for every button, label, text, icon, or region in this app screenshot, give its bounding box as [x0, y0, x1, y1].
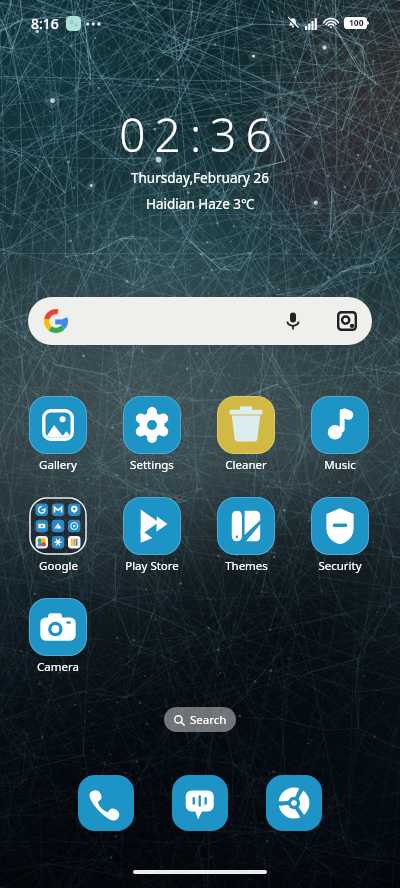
button[interactable]: Themes	[204, 494, 288, 576]
staticText: Security	[318, 558, 362, 574]
button[interactable]: Phone	[78, 775, 134, 831]
staticText: Themes	[225, 558, 268, 574]
button[interactable]: Search	[164, 707, 236, 732]
button[interactable]: Security	[298, 494, 382, 576]
button[interactable]: Chrome	[266, 775, 322, 831]
button[interactable]: Settings	[110, 393, 194, 475]
button[interactable]: Camera	[16, 595, 100, 677]
staticText: 100	[349, 17, 364, 29]
other: Voice search	[283, 311, 303, 331]
staticText: 02:36	[119, 103, 281, 166]
other: Google Lens	[336, 310, 358, 332]
button[interactable]: Cleaner	[204, 393, 288, 475]
button[interactable]: Voice search	[28, 297, 372, 345]
staticText: Settings	[130, 457, 174, 473]
button[interactable]: Gallery	[16, 393, 100, 475]
button[interactable]: Music	[298, 393, 382, 475]
button[interactable]: Google	[16, 494, 100, 576]
staticText: Google	[39, 558, 78, 574]
staticText: Gallery	[39, 457, 77, 473]
staticText: Search	[190, 712, 227, 728]
button[interactable]: Play Store	[110, 494, 194, 576]
staticText: Haidian Haze 3℃	[146, 195, 255, 213]
staticText: Camera	[37, 659, 79, 675]
staticText: Thursday,February 26	[131, 169, 269, 187]
staticText: Cleaner	[225, 457, 267, 473]
staticText: Music	[324, 457, 356, 473]
staticText: 8:16	[31, 14, 59, 33]
button[interactable]: Messages	[172, 775, 228, 831]
staticText: Play Store	[125, 558, 179, 574]
